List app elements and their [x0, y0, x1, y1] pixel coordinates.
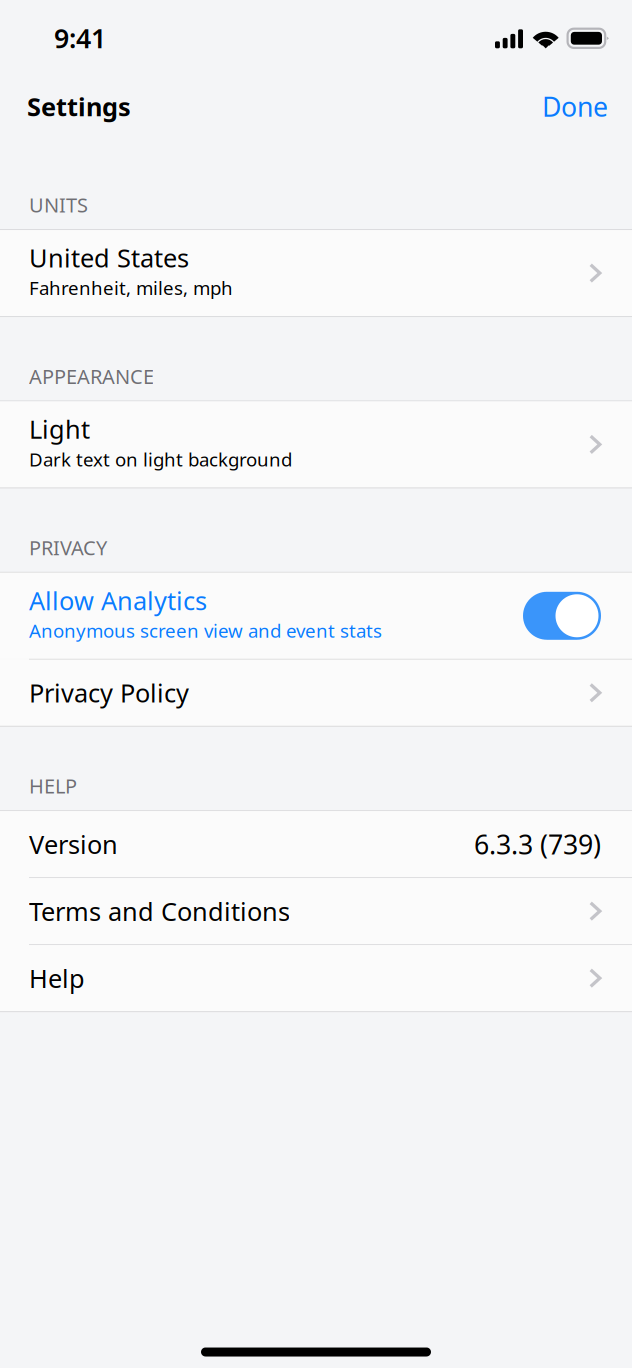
button[interactable]: Help [0, 945, 632, 1011]
staticText: Version [29, 827, 118, 861]
staticText: United States [29, 241, 189, 274]
staticText: Allow Analytics [29, 584, 207, 617]
staticText: HELP [29, 773, 77, 799]
button[interactable]: Allow Analytics [0, 573, 632, 659]
button[interactable]: Done [542, 89, 608, 124]
staticText: APPEARANCE [29, 363, 154, 389]
staticText: Light [29, 412, 90, 446]
staticText: UNITS [29, 191, 88, 218]
staticText: 9:41 [54, 20, 106, 56]
staticText: PRIVACY [29, 534, 107, 561]
staticText: Fahrenheit, miles, mph [29, 275, 233, 300]
button[interactable]: Terms and Conditions [0, 878, 632, 944]
staticText: 6.3.3 (739) [474, 826, 601, 862]
staticText: Privacy Policy [29, 676, 189, 710]
button[interactable]: Privacy Policy [0, 660, 632, 726]
staticText: Anonymous screen view and event stats [29, 618, 382, 643]
staticText: Done [542, 89, 608, 124]
button[interactable]: United States [0, 230, 632, 316]
button[interactable]: Light [0, 401, 632, 487]
staticText: Dark text on light background [29, 447, 292, 472]
staticText: Settings [27, 90, 131, 123]
staticText: Terms and Conditions [29, 894, 290, 928]
staticText: Help [29, 961, 85, 995]
